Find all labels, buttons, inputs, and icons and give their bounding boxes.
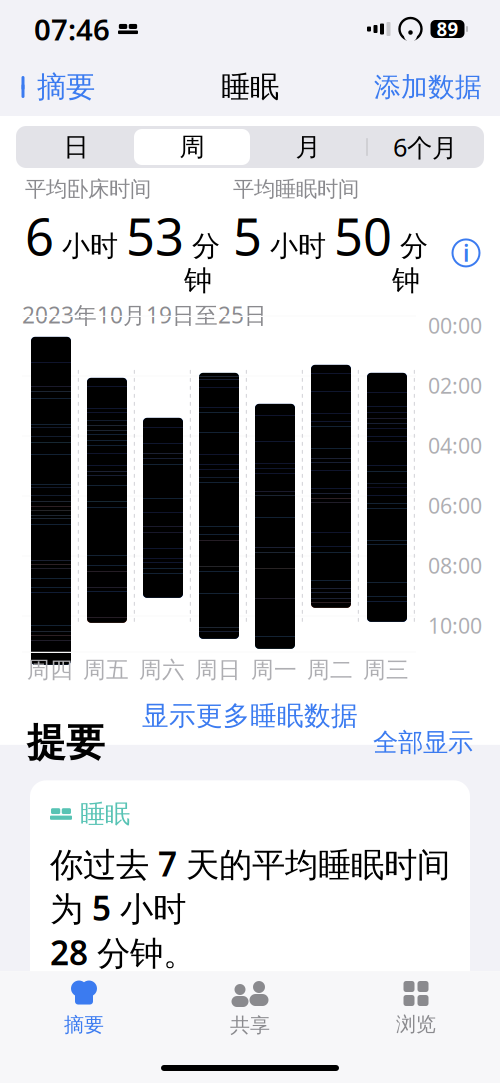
staticText: 小时: [262, 229, 334, 263]
staticText: 平均睡眠时间: [233, 176, 359, 202]
staticText: 添加数据: [374, 71, 482, 103]
button[interactable]: 月: [250, 129, 366, 165]
button[interactable]: 摘要: [1, 980, 167, 1038]
staticText: 日: [63, 131, 88, 162]
staticText: 周三: [363, 656, 409, 684]
button[interactable]: 浏览: [333, 980, 499, 1038]
staticText: 显示更多睡眠数据: [142, 699, 358, 732]
staticText: 摘要: [37, 69, 95, 105]
staticText: 07:46: [34, 9, 110, 48]
staticText: 06:00: [428, 491, 482, 520]
staticText: 小时: [54, 229, 126, 263]
staticText: 周: [179, 131, 204, 162]
staticText: i: [463, 238, 469, 268]
staticText: 周二: [307, 656, 353, 684]
button[interactable]: 周: [134, 129, 250, 165]
staticText: 全部显示: [373, 727, 473, 758]
button[interactable]: 共享: [167, 980, 333, 1038]
staticText: 10:00: [428, 611, 482, 640]
staticText: 04:00: [428, 431, 482, 460]
staticText: 89: [436, 17, 458, 41]
staticText: 分钟: [392, 229, 428, 298]
button[interactable]: 日: [18, 129, 134, 165]
button[interactable]: 摘要: [4, 61, 109, 113]
staticText: 02:00: [428, 371, 482, 400]
staticText: 月: [295, 131, 320, 162]
staticText: 平均卧床时间: [25, 176, 151, 202]
staticText: 53: [126, 202, 184, 269]
staticText: 2023年10月19日至25日: [22, 300, 267, 330]
button[interactable]: 全部显示: [361, 721, 473, 764]
staticText: 共享: [230, 1013, 270, 1038]
staticText: 00:00: [428, 311, 482, 340]
staticText: 5: [233, 202, 262, 269]
staticText: 50: [334, 202, 392, 269]
staticText: 分钟: [184, 229, 220, 298]
staticText: 周六: [139, 656, 185, 684]
staticText: 浏览: [396, 1012, 436, 1037]
staticText: 摘要: [64, 1012, 104, 1037]
staticText: 周五: [83, 656, 129, 684]
button[interactable]: 睡眠: [30, 780, 470, 1075]
staticText: 08:00: [428, 551, 482, 580]
button[interactable]: 显示更多睡眠数据: [0, 687, 500, 745]
staticText: 周四: [27, 656, 73, 684]
staticText: 你过去 7 天的平均睡眠时间为 5 小时 28 分钟。: [50, 841, 450, 974]
button[interactable]: 6个月: [368, 129, 482, 165]
staticText: 周一: [251, 656, 297, 684]
button[interactable]: 添加数据: [360, 63, 496, 111]
staticText: 6个月: [393, 130, 457, 164]
button[interactable]: 关于睡眠数据: [446, 233, 486, 273]
staticText: 周日: [195, 656, 241, 684]
staticText: 提要: [27, 719, 105, 766]
staticText: 睡眠: [80, 798, 130, 829]
staticText: 睡眠: [221, 69, 279, 105]
staticText: 平均睡眠时间: [50, 1007, 194, 1037]
staticText: 6: [25, 202, 54, 269]
